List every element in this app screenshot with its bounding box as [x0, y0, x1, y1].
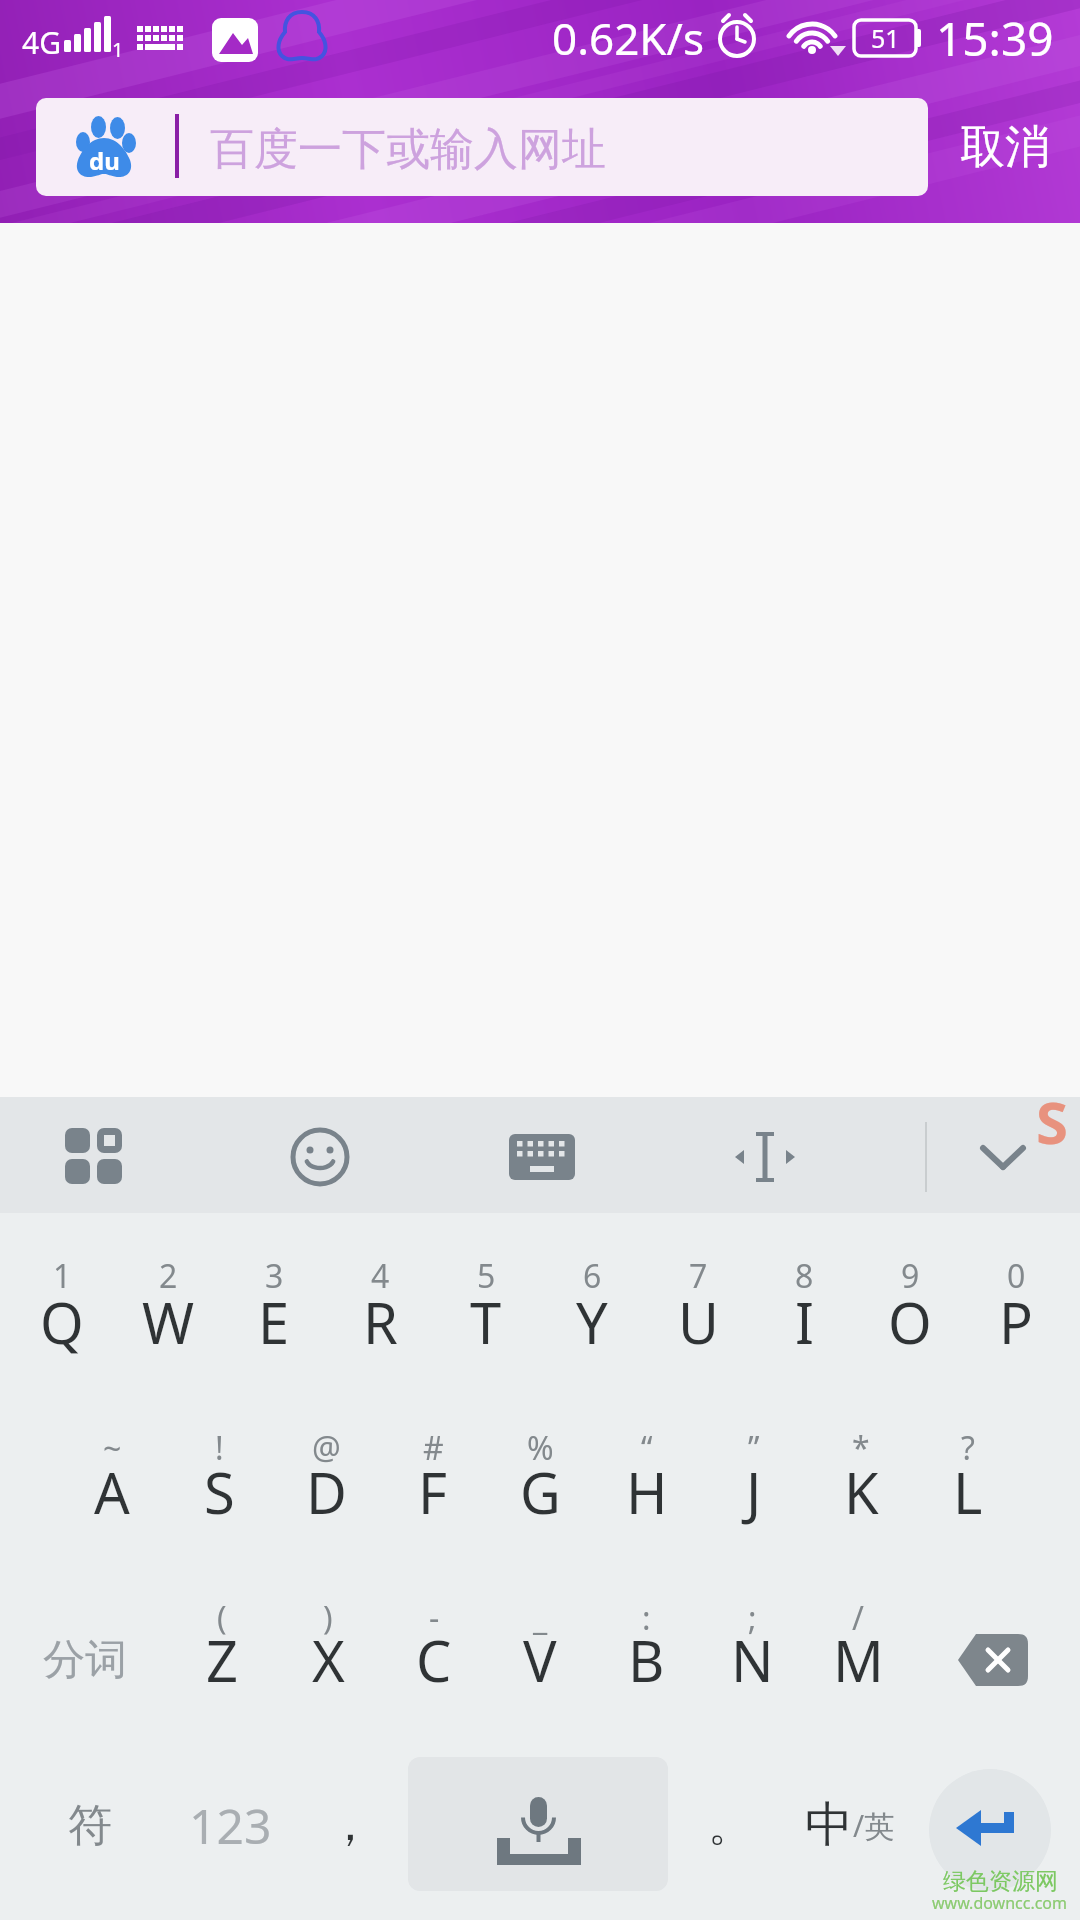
staticText: 2 [159, 1254, 178, 1298]
staticText: S [204, 1454, 235, 1530]
button[interactable]: @ [273, 1412, 379, 1580]
button[interactable]: ， [310, 1775, 390, 1875]
staticText: X [312, 1622, 345, 1698]
button[interactable]: 0 [963, 1240, 1069, 1408]
button[interactable]: ! [166, 1412, 272, 1580]
button[interactable]: % [487, 1412, 593, 1580]
staticText: ; [748, 1596, 757, 1640]
staticText: F [418, 1454, 448, 1530]
button[interactable]: * [808, 1412, 914, 1580]
staticText: 。 [708, 1798, 752, 1853]
staticText: W [142, 1284, 195, 1360]
staticText: L [953, 1454, 983, 1530]
staticText: C [416, 1622, 452, 1698]
staticText: “ [641, 1426, 653, 1470]
staticText: 5 [477, 1254, 496, 1298]
button[interactable]: 取消 [940, 105, 1070, 189]
staticText: * [852, 1426, 870, 1470]
staticText: / [852, 1596, 864, 1640]
staticText: R [363, 1284, 398, 1360]
staticText: 分词 [43, 1634, 127, 1687]
button[interactable]: _ [487, 1582, 593, 1750]
staticText: : [642, 1596, 651, 1640]
button[interactable] [35, 1105, 155, 1205]
button[interactable]: 6 [539, 1240, 645, 1408]
staticText: 8 [795, 1254, 814, 1298]
staticText: S [1036, 1082, 1068, 1161]
button[interactable] [705, 1105, 825, 1205]
button[interactable]: ? [915, 1412, 1021, 1580]
button[interactable]: : [593, 1582, 699, 1750]
button[interactable]: 5 [433, 1240, 539, 1408]
staticText: Y [576, 1284, 608, 1360]
staticText: E [258, 1284, 290, 1360]
staticText: N [731, 1622, 774, 1698]
staticText: ) [323, 1596, 333, 1640]
staticText: Q [40, 1284, 84, 1360]
staticText: 123 [189, 1793, 272, 1858]
staticText: www.downcc.com [932, 1892, 1068, 1914]
button[interactable] [940, 1608, 1050, 1708]
staticText: G [520, 1454, 561, 1530]
button[interactable]: 百度一下或输入网址 [36, 98, 928, 196]
staticText: 中 [805, 1795, 853, 1855]
button[interactable]: 。 [690, 1775, 770, 1875]
staticText: ! [215, 1426, 224, 1470]
staticText: K [844, 1454, 879, 1530]
staticText: 1 [53, 1254, 72, 1298]
button[interactable]: 3 [221, 1240, 327, 1408]
staticText: ( [217, 1596, 227, 1640]
staticText: 符 [68, 1798, 112, 1853]
staticText: 7 [689, 1254, 708, 1298]
button[interactable]: ~ [59, 1412, 165, 1580]
staticText: P [999, 1284, 1033, 1360]
button[interactable]: ” [701, 1412, 807, 1580]
staticText: D [306, 1454, 347, 1530]
button[interactable]: ; [699, 1582, 805, 1750]
staticText: 9 [901, 1254, 920, 1298]
button[interactable]: 分词 [20, 1600, 150, 1720]
staticText: 4G [22, 22, 61, 63]
staticText: ? [961, 1426, 975, 1470]
staticText: 百度一下或输入网址 [210, 122, 606, 177]
staticText: Z [206, 1622, 239, 1698]
button[interactable]: # [380, 1412, 486, 1580]
staticText: ~ [103, 1426, 122, 1470]
staticText: 绿色资源网 [943, 1867, 1058, 1896]
staticText: 取消 [960, 119, 1050, 176]
button[interactable]: 9 [857, 1240, 963, 1408]
button[interactable]: 符 [40, 1775, 140, 1875]
button[interactable]: 2 [115, 1240, 221, 1408]
staticText: 1 [112, 36, 124, 63]
button[interactable]: “ [594, 1412, 700, 1580]
button[interactable]: / [805, 1582, 911, 1750]
staticText: 51 [871, 21, 900, 55]
button[interactable] [929, 1769, 1051, 1891]
button[interactable]: ( [169, 1582, 275, 1750]
staticText: _ [533, 1596, 548, 1640]
staticText: 4 [371, 1254, 390, 1298]
staticText: 0 [1007, 1254, 1026, 1298]
staticText: O [888, 1284, 932, 1360]
staticText: B [628, 1622, 665, 1698]
button[interactable] [943, 1105, 1063, 1205]
staticText: 0.62K/s [552, 8, 704, 68]
button[interactable] [482, 1105, 602, 1205]
button[interactable]: 中 [790, 1775, 910, 1875]
staticText: ” [748, 1426, 760, 1470]
button[interactable] [260, 1105, 380, 1205]
button[interactable]: 123 [170, 1775, 290, 1875]
button[interactable]: - [381, 1582, 487, 1750]
staticText: J [746, 1454, 762, 1530]
button[interactable]: ) [275, 1582, 381, 1750]
button[interactable]: 7 [645, 1240, 751, 1408]
button[interactable]: 1 [9, 1240, 115, 1408]
staticText: % [527, 1426, 554, 1470]
staticText: - [429, 1596, 440, 1640]
button[interactable]: 8 [751, 1240, 857, 1408]
button[interactable] [408, 1757, 668, 1891]
staticText: du [89, 144, 120, 177]
staticText: U [678, 1284, 719, 1360]
button[interactable]: 4 [327, 1240, 433, 1408]
staticText: ， [327, 1796, 373, 1854]
